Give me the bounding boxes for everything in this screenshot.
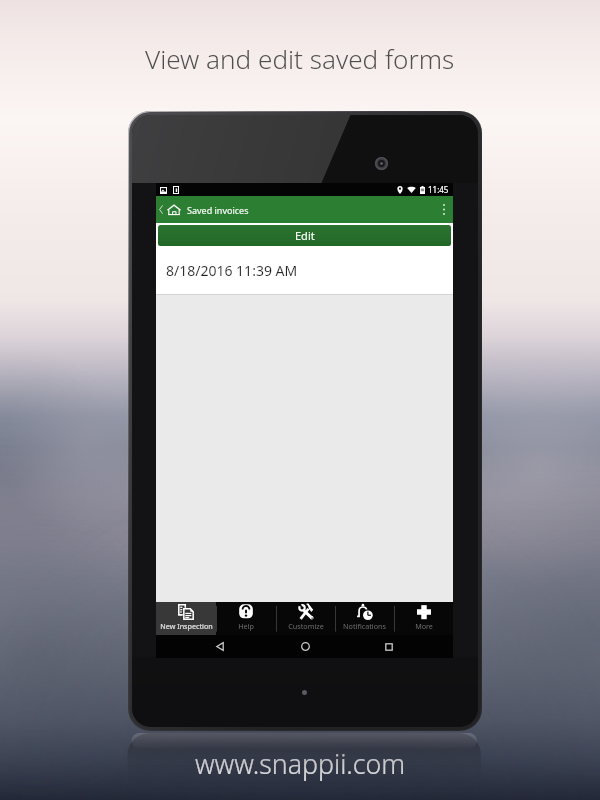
button[interactable]: More options (435, 196, 453, 223)
button[interactable]: Back (200, 635, 240, 658)
staticText: 8/18/2016 11:39 AM (166, 261, 298, 280)
staticText: Edit (295, 228, 315, 243)
staticText: Customize (288, 621, 324, 631)
staticText: Saved invoices (187, 204, 249, 216)
button[interactable]: More (394, 602, 453, 635)
staticText: Help (238, 621, 254, 631)
button[interactable]: Customize (276, 602, 335, 635)
button[interactable]: Help (216, 602, 276, 635)
button[interactable]: Recent apps (369, 635, 409, 658)
staticText: 11:45 (428, 184, 449, 195)
staticText: New Inspection (160, 621, 213, 631)
button[interactable]: Home (285, 635, 325, 658)
staticText: www.snappii.com (195, 745, 406, 781)
button[interactable]: Edit (158, 225, 451, 246)
button[interactable]: New Inspection (156, 602, 216, 635)
staticText: Notifications (343, 621, 386, 631)
staticText: View and edit saved forms (145, 41, 455, 77)
staticText: More (415, 621, 433, 631)
button[interactable]: 8/18/2016 11:39 AM (156, 247, 453, 294)
button[interactable]: Back to home (156, 196, 251, 223)
button[interactable]: Notifications (335, 602, 394, 635)
